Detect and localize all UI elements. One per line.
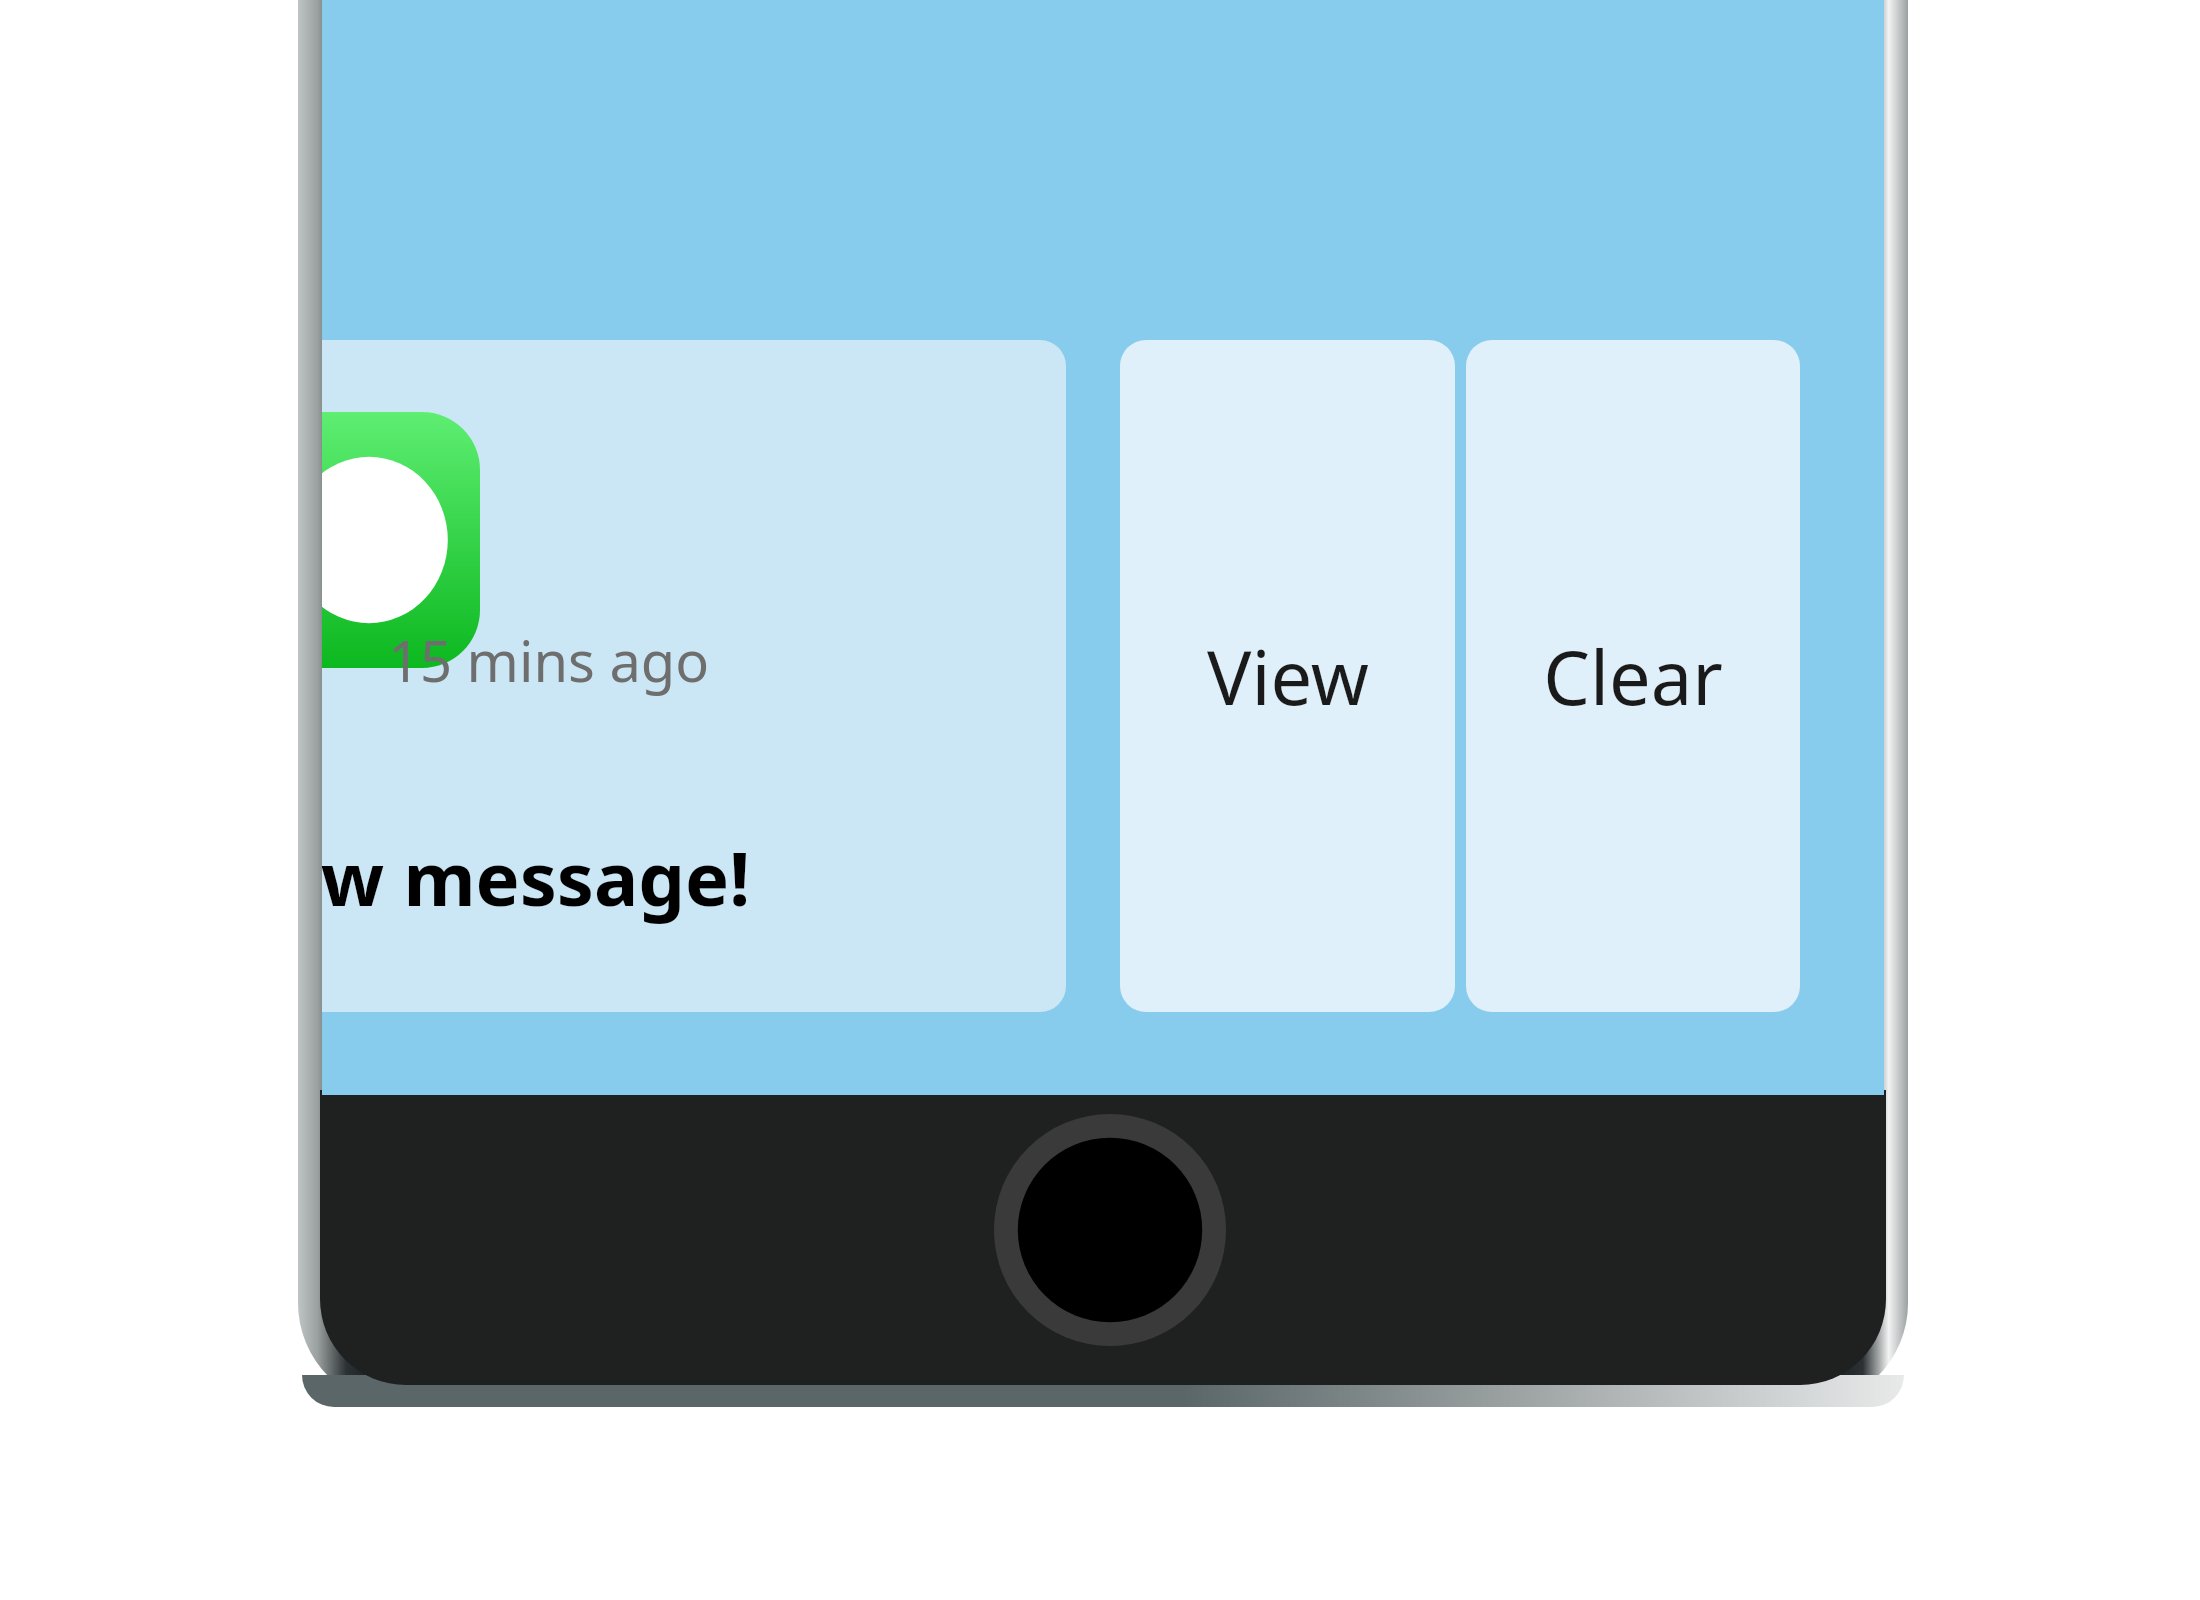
- button[interactable]: Clear: [1466, 340, 1800, 1012]
- staticText: View: [1207, 626, 1369, 727]
- staticText: Clear: [1543, 626, 1723, 727]
- staticText: new message!: [322, 827, 751, 928]
- button[interactable]: 15 mins ago: [322, 340, 1066, 1012]
- staticText: 15 mins ago: [388, 622, 710, 698]
- button[interactable]: Home: [994, 1114, 1226, 1346]
- button[interactable]: View: [1120, 340, 1455, 1012]
